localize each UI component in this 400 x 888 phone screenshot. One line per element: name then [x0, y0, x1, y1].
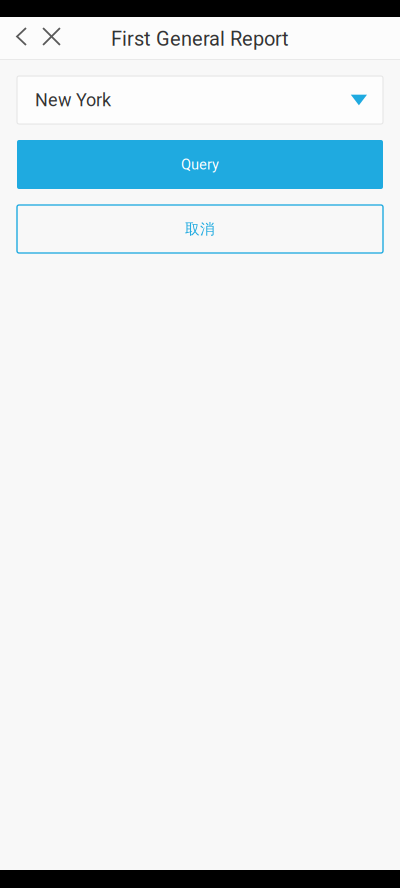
button[interactable]: Back: [8, 17, 35, 59]
staticText: 取消: [185, 220, 215, 238]
button[interactable]: Close: [35, 17, 68, 59]
staticText: New York: [35, 89, 111, 111]
staticText: First General Report: [111, 27, 289, 51]
button[interactable]: 取消: [17, 205, 383, 253]
button[interactable]: Query: [17, 140, 383, 189]
button[interactable]: New York: [17, 76, 383, 124]
staticText: Query: [181, 156, 219, 173]
